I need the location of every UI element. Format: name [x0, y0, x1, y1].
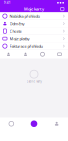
staticText: 9:41: [4, 1, 11, 4]
staticText: Moje platby: [10, 36, 30, 41]
button[interactable]: Cards: [51, 50, 68, 58]
button[interactable]: Moje platby: [0, 35, 68, 42]
staticText: Fakturace přehledu: [10, 43, 43, 49]
button[interactable]: Profile: [45, 117, 68, 130]
staticText: Moje karty: [24, 6, 44, 12]
staticText: Chcete: [10, 28, 22, 34]
staticText: Nabídka přehledů: [10, 13, 40, 19]
button[interactable]: Odměny: [0, 20, 68, 27]
button[interactable]: Settings: [59, 6, 65, 12]
button[interactable]: Scan: [23, 117, 45, 130]
button[interactable]: Nabídka přehledů: [0, 12, 68, 20]
button[interactable]: Contacts: [0, 50, 17, 58]
button[interactable]: Help: [34, 50, 51, 58]
staticText: Odměny: [10, 21, 25, 26]
staticText: Žádné karty: [26, 80, 41, 83]
button[interactable]: Profile: [17, 50, 34, 58]
button[interactable]: Chcete: [0, 27, 68, 35]
button[interactable]: Fakturace přehledu: [0, 42, 68, 50]
button[interactable]: Home: [0, 117, 23, 130]
